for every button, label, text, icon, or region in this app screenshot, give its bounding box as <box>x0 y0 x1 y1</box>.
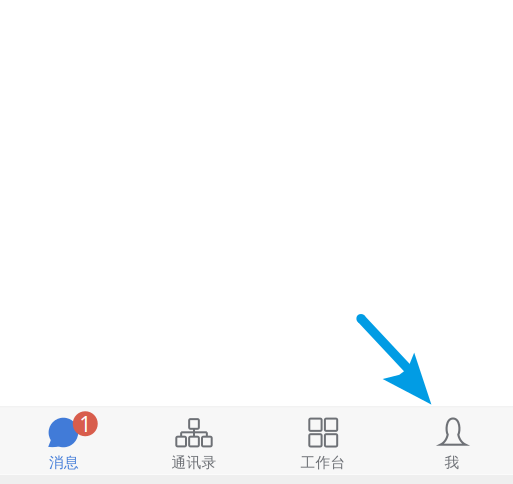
button[interactable]: 通讯录 <box>128 406 256 475</box>
staticText: 通讯录 <box>171 453 216 471</box>
button[interactable]: 工作台 <box>256 406 385 475</box>
button[interactable]: 我 <box>385 406 513 475</box>
staticText: 我 <box>444 453 459 471</box>
staticText: 工作台 <box>300 453 345 471</box>
staticText: 1 <box>79 410 91 438</box>
button[interactable]: 1 <box>0 406 128 475</box>
staticText: 消息 <box>49 453 79 471</box>
